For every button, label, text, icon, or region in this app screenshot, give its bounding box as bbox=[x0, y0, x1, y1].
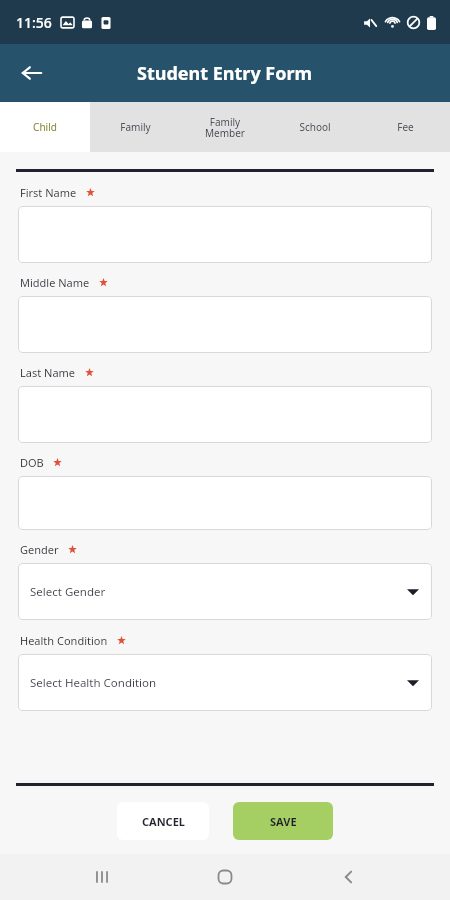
button[interactable]: Select Gender bbox=[18, 563, 432, 620]
button[interactable] bbox=[18, 386, 432, 443]
staticText: CANCEL bbox=[142, 814, 185, 829]
staticText: Fee bbox=[397, 120, 414, 134]
button[interactable]: Child bbox=[0, 102, 90, 152]
button[interactable] bbox=[18, 476, 432, 530]
staticText: First Name bbox=[20, 185, 77, 200]
staticText: Middle Name bbox=[20, 275, 90, 290]
button[interactable]: Back bbox=[12, 53, 52, 93]
staticText: Gender bbox=[20, 542, 59, 557]
button[interactable]: Family Member bbox=[180, 102, 270, 152]
staticText: Select Gender bbox=[30, 584, 106, 600]
button[interactable] bbox=[18, 206, 432, 263]
button[interactable]: SAVE bbox=[233, 802, 333, 840]
staticText: Last Name bbox=[20, 365, 76, 380]
staticText: SAVE bbox=[270, 814, 297, 829]
button[interactable]: Select Health Condition bbox=[18, 654, 432, 711]
staticText: Health Condition bbox=[20, 633, 108, 648]
staticText: DOB bbox=[20, 455, 44, 470]
staticText: 11:56 bbox=[16, 13, 52, 32]
staticText: Family bbox=[120, 120, 151, 134]
button[interactable]: CANCEL bbox=[117, 802, 209, 840]
button[interactable]: Family bbox=[90, 102, 180, 152]
staticText: Child bbox=[33, 120, 57, 134]
staticText: Family Member bbox=[205, 115, 245, 140]
staticText: School bbox=[299, 120, 331, 134]
button[interactable] bbox=[18, 296, 432, 353]
staticText: Student Entry Form bbox=[137, 61, 313, 86]
button[interactable]: Back bbox=[327, 855, 371, 899]
button[interactable]: Recent apps bbox=[80, 855, 124, 899]
staticText: Select Health Condition bbox=[30, 675, 157, 691]
button[interactable]: Fee bbox=[360, 102, 450, 152]
button[interactable]: School bbox=[270, 102, 360, 152]
button[interactable]: Home bbox=[203, 855, 247, 899]
